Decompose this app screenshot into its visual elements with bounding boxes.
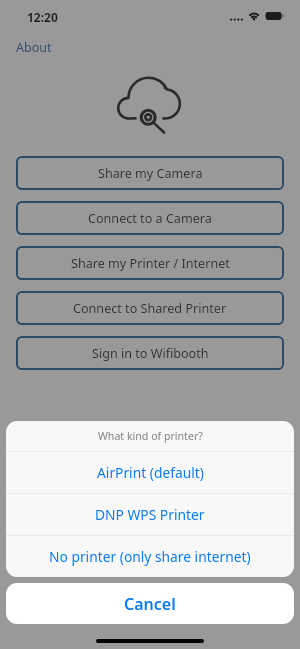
staticText: No printer (only share internet) [49,547,251,566]
staticText: Share my Camera [98,165,203,182]
staticText: Connect to a Camera [88,210,212,227]
staticText: DNP WPS Printer [95,505,205,524]
staticText: Cancel [124,593,176,615]
button[interactable]: Connect to a Camera [16,201,284,235]
button[interactable]: AirPrint (default) [6,452,294,493]
staticText: Share my Printer / Internet [71,255,230,272]
button[interactable]: Connect to Shared Printer [16,291,284,325]
staticText: Connect to Shared Printer [73,300,227,317]
button[interactable]: Share my Camera [16,156,284,190]
staticText: About [16,39,52,56]
staticText: AirPrint (default) [97,463,204,482]
button[interactable]: Sign in to Wifibooth [16,336,284,370]
button[interactable]: DNP WPS Printer [6,494,294,535]
button[interactable]: No printer (only share internet) [6,536,294,577]
staticText: What kind of printer? [98,429,203,443]
other: Cloud search [117,77,183,139]
button[interactable]: Cancel [6,583,294,624]
staticText: 12:20 [27,9,58,25]
button[interactable]: Share my Printer / Internet [16,246,284,280]
staticText: Sign in to Wifibooth [92,345,209,362]
button[interactable]: About [16,39,52,56]
